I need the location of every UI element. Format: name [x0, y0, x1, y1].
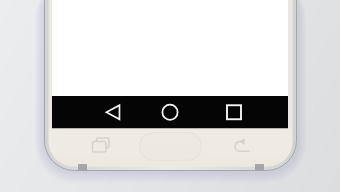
button[interactable]: Home [142, 96, 198, 129]
button[interactable]: Back key [220, 130, 260, 164]
button[interactable]: Recent apps [206, 96, 262, 129]
button[interactable]: Overview key [80, 130, 120, 164]
button[interactable]: Back [86, 96, 142, 129]
